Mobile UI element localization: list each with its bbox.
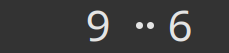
staticText: 6 bbox=[167, 0, 192, 53]
staticText: 9 bbox=[85, 0, 110, 53]
